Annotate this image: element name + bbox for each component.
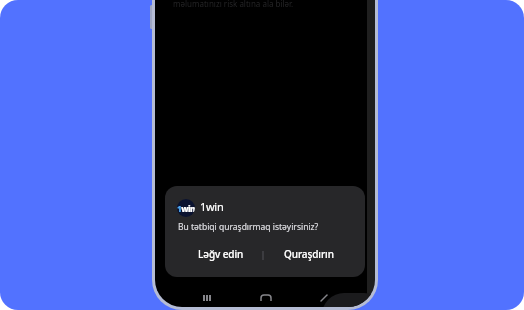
staticText: Quraşdırın [284, 247, 334, 261]
button[interactable]: Ləğv edin [165, 240, 264, 270]
staticText: məlumatınızı risk altına ala bilər. [173, 0, 294, 9]
button[interactable]: Home [256, 288, 276, 308]
staticText: Bu tətbiqi quraşdırmaq istəyirsiniz? [178, 221, 319, 233]
button[interactable]: Quraşdırın [266, 240, 365, 270]
button[interactable]: Recent apps [197, 288, 217, 308]
staticText: 1win [177, 203, 195, 214]
button[interactable]: Back [314, 288, 334, 308]
staticText: Ləğv edin [198, 247, 244, 261]
staticText: 1win [200, 199, 224, 214]
